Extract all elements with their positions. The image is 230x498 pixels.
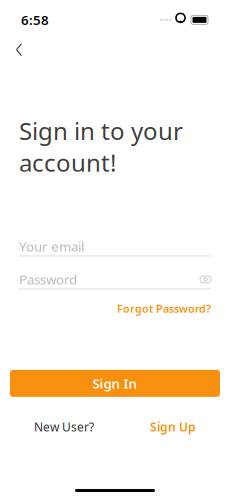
button[interactable]: Sign In [10, 370, 220, 397]
staticText: Forgot Password? [117, 301, 211, 316]
button[interactable]: Sign Up [150, 419, 196, 435]
staticText: 6:58 [21, 11, 49, 29]
staticText: Sign in to your account! [19, 115, 183, 178]
staticText: Your email [19, 238, 84, 255]
staticText: Sign Up [150, 419, 196, 435]
button[interactable]: Back [6, 37, 32, 63]
staticText: Password [19, 271, 77, 288]
staticText: New User? [34, 419, 94, 435]
button[interactable]: Your email [19, 237, 211, 256]
staticText: Sign In [92, 374, 137, 392]
button[interactable]: New User? [34, 419, 94, 435]
button[interactable]: Forgot Password? [117, 301, 211, 316]
button[interactable]: Password [19, 270, 211, 289]
